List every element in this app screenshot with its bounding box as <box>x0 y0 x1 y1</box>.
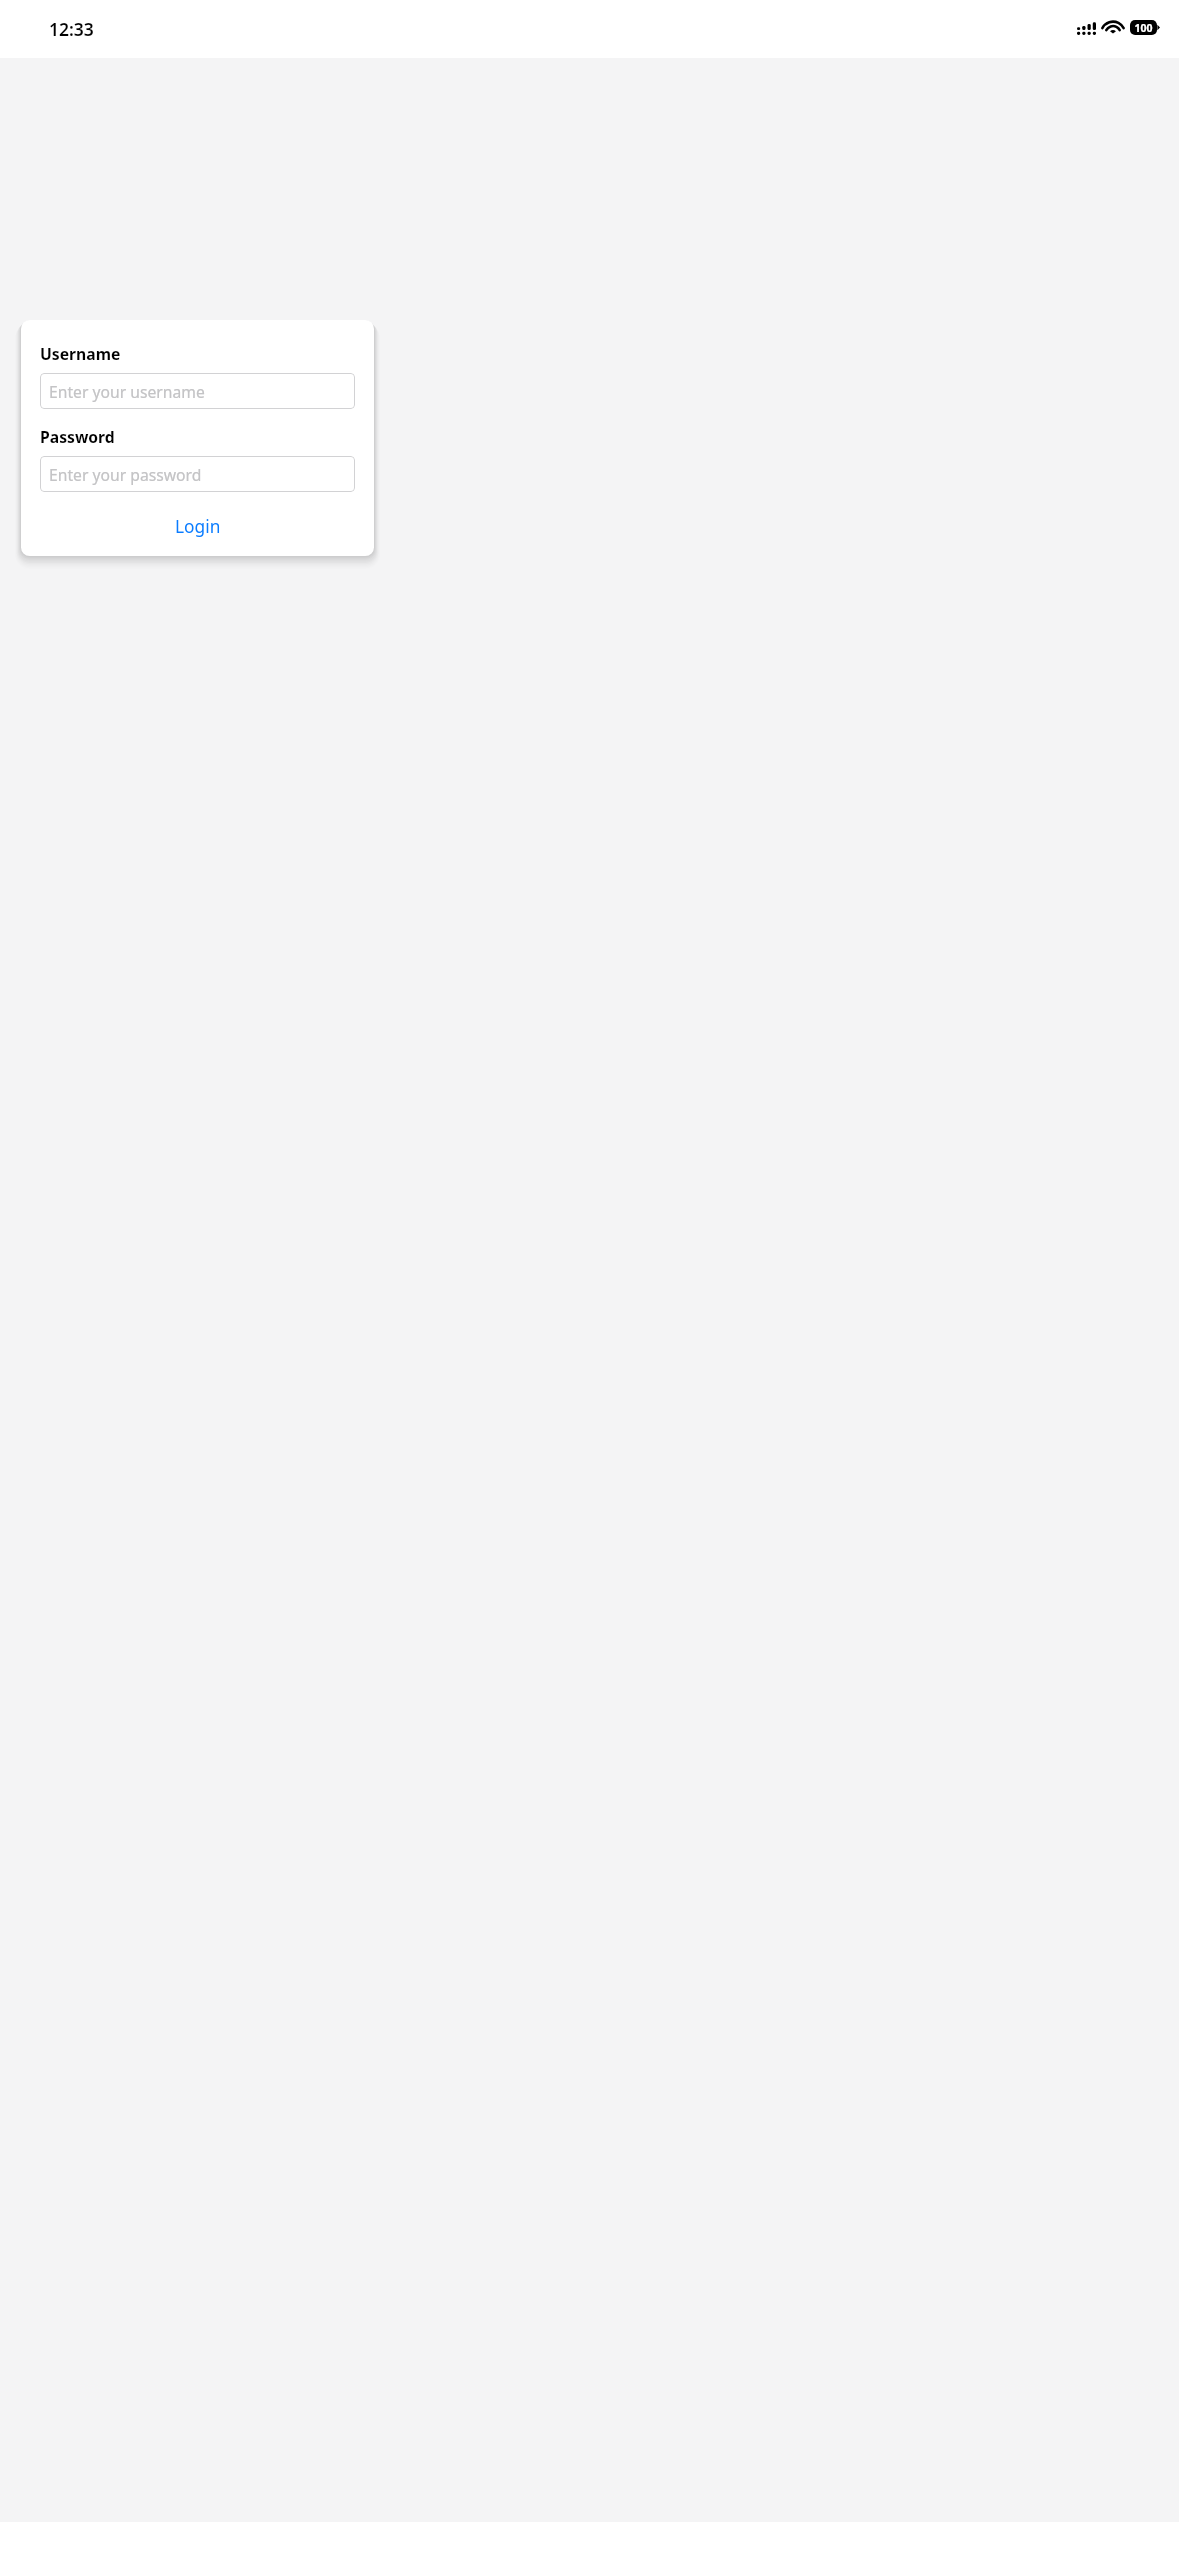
staticText: Enter your password <box>49 464 202 485</box>
button[interactable]: Username input <box>40 373 355 409</box>
staticText: Password <box>40 426 115 447</box>
staticText: 100 <box>1134 21 1153 35</box>
staticText: Login <box>175 515 221 539</box>
button[interactable]: Login <box>21 504 374 556</box>
staticText: 12:33 <box>49 17 94 41</box>
button[interactable]: Password input <box>40 456 355 492</box>
staticText: Enter your username <box>49 381 205 402</box>
staticText: Username <box>40 343 121 364</box>
